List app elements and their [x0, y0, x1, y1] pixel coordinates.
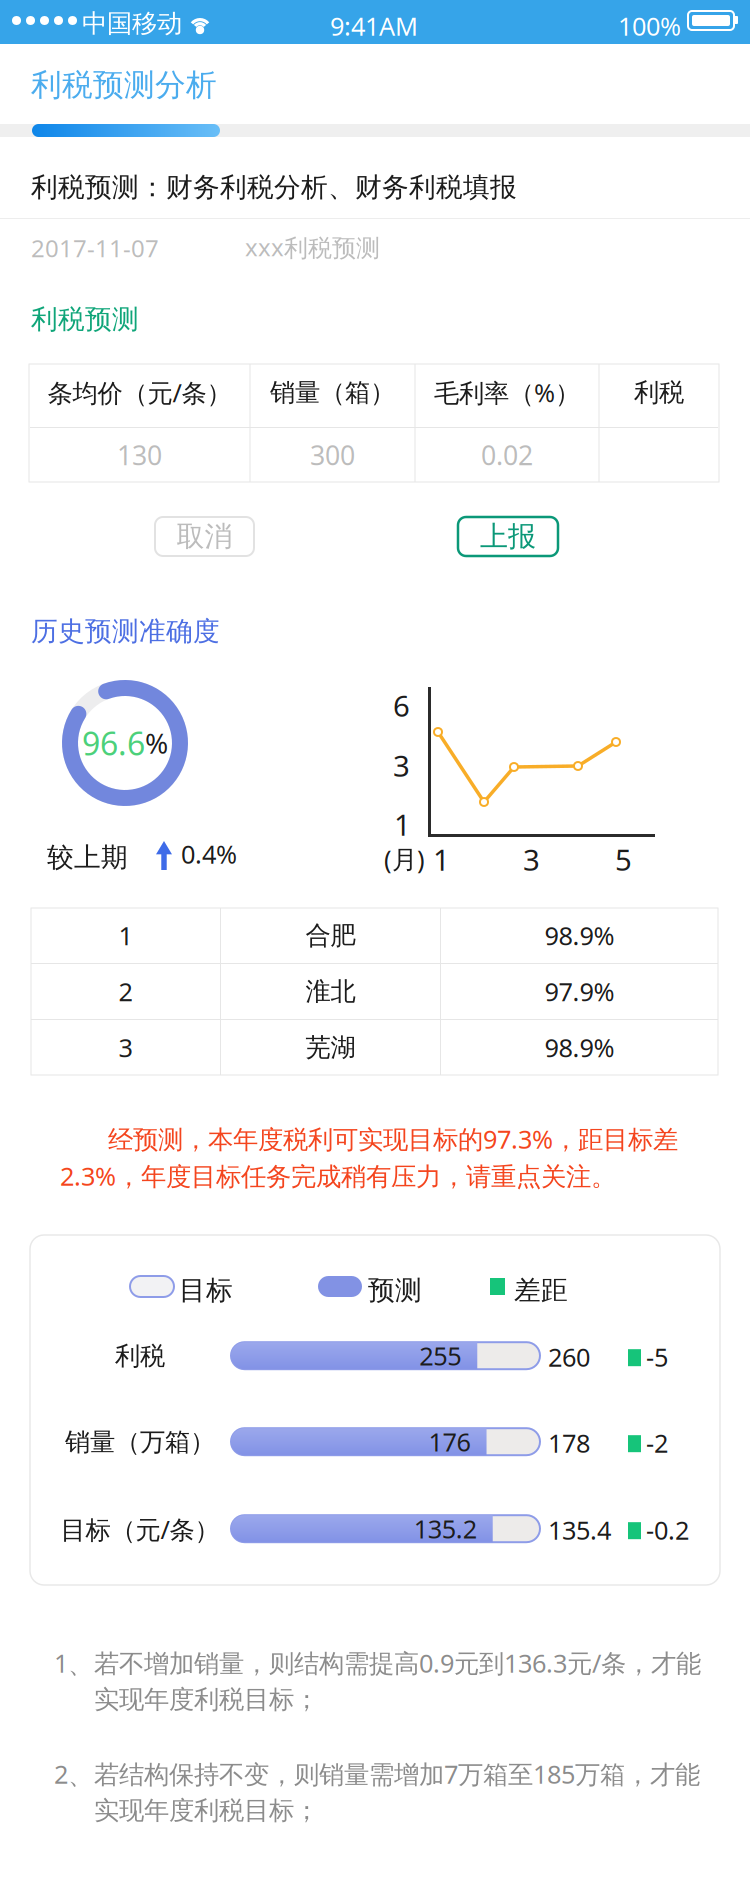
staticText: 3 [393, 746, 410, 785]
staticText: 2 [118, 975, 132, 1008]
button[interactable]: 取消 [155, 517, 254, 556]
staticText: 135.2 [414, 1512, 477, 1545]
button[interactable]: 利税预测分析 [31, 63, 231, 107]
staticText: 历史预测准确度 [31, 615, 220, 648]
staticText: 3 [118, 1031, 132, 1064]
staticText: 9:41AM [330, 9, 418, 43]
staticText: 差距 [514, 1274, 568, 1307]
staticText: 芜湖 [305, 1032, 355, 1063]
staticText: 中国移动 [82, 8, 182, 39]
staticText: -2 [646, 1426, 668, 1460]
staticText: 利税 [634, 377, 684, 408]
staticText: 0.02 [481, 437, 533, 473]
staticText: 100% [618, 9, 681, 43]
staticText: 130 [117, 437, 162, 473]
staticText: 300 [310, 437, 355, 473]
staticText: xxx利税预测 [245, 231, 380, 263]
staticText: 若不增加销量，则结构需提高0.9元到136.3元/条，才能 [94, 1646, 701, 1680]
staticText: 178 [548, 1426, 590, 1460]
staticText: 1 [394, 805, 411, 844]
staticText: 利税预测：财务利税分析、财务利税填报 [31, 171, 517, 204]
staticText: 实现年度利税目标； [94, 1684, 319, 1715]
staticText: 260 [548, 1340, 590, 1374]
staticText: 135.4 [548, 1513, 611, 1547]
staticText: 若结构保持不变，则销量需增加7万箱至185万箱，才能 [94, 1757, 700, 1791]
staticText: 98.9% [544, 1031, 614, 1064]
staticText: 经预测，本年度税利可实现目标的97.3%，距目标差 [108, 1122, 678, 1156]
staticText: 利税预测分析 [31, 66, 217, 104]
staticText: 2017-11-07 [31, 232, 159, 264]
staticText: 255 [419, 1339, 461, 1372]
staticText: 2、 [54, 1757, 93, 1791]
staticText: 1 [118, 919, 132, 952]
staticText: 3 [523, 840, 540, 879]
staticText: % [145, 724, 168, 762]
staticText: 2.3%，年度目标任务完成稍有压力，请重点关注。 [60, 1159, 616, 1193]
staticText: 取消 [176, 519, 232, 554]
staticText: 利税预测 [31, 303, 139, 336]
staticText: 176 [428, 1425, 470, 1458]
staticText: 预测 [368, 1274, 422, 1307]
staticText: 条均价（元/条） [47, 376, 231, 409]
staticText: 97.9% [544, 975, 614, 1008]
staticText: 上报 [480, 519, 536, 554]
staticText: 淮北 [305, 976, 355, 1007]
staticText: 利税 [115, 1341, 165, 1372]
staticText: 6 [393, 686, 410, 725]
staticText: 96.6 [82, 722, 145, 764]
staticText: 较上期 [47, 841, 128, 874]
staticText: 销量（箱） [270, 377, 395, 408]
staticText: 0.4% [181, 837, 237, 871]
staticText: 1、 [54, 1646, 93, 1680]
button[interactable]: 上报 [458, 517, 558, 556]
staticText: 1 [433, 840, 450, 879]
staticText: 销量（万箱） [65, 1427, 215, 1458]
staticText: -5 [646, 1340, 668, 1374]
staticText: 98.9% [544, 919, 614, 952]
staticText: 合肥 [305, 920, 355, 951]
staticText: 目标 [179, 1274, 233, 1307]
staticText: 毛利率（%） [434, 376, 580, 409]
staticText: 5 [615, 840, 632, 879]
staticText: 实现年度利税目标； [94, 1795, 319, 1826]
staticText: -0.2 [646, 1513, 689, 1547]
staticText: 目标（元/条） [60, 1512, 219, 1546]
staticText: (月) [384, 842, 425, 876]
